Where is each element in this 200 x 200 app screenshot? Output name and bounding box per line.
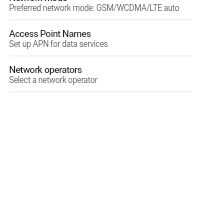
staticText: Select a network operator — [9, 75, 98, 85]
button[interactable]: Network operators — [0, 56, 200, 92]
staticText: Access Point Names — [9, 28, 91, 39]
staticText: Preferred network mode: GSM/WCDMA/LTE au… — [9, 3, 180, 13]
staticText: Set up APN for data services — [9, 39, 108, 49]
button[interactable]: Network mode — [0, 0, 200, 20]
staticText: Network operators — [9, 64, 82, 75]
button[interactable]: Access Point Names — [0, 20, 200, 56]
staticText: Network mode — [9, 0, 67, 3]
